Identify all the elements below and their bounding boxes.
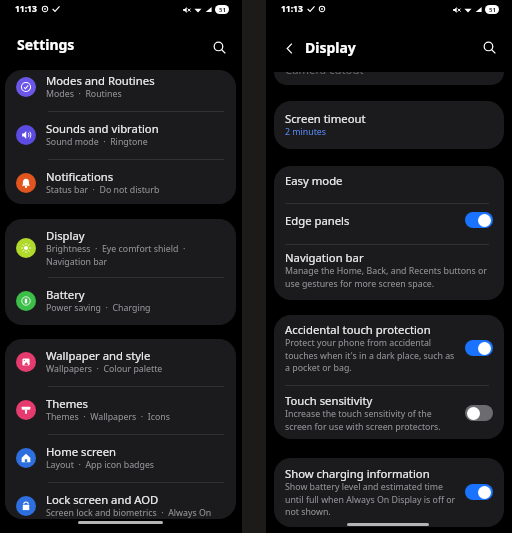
button[interactable]: Easy mode (274, 166, 504, 203)
staticText: Increase the touch sensitivity of the sc… (285, 408, 441, 432)
button[interactable]: Themes (5, 387, 236, 434)
staticText: Home screen (46, 444, 117, 459)
staticText: Screen timeout (285, 111, 366, 126)
staticText: Screen lock and biometrics · Always On (46, 507, 212, 519)
staticText: Easy mode (285, 173, 343, 188)
staticText: 51 (489, 6, 496, 14)
staticText: Show battery level and estimated time un… (285, 481, 456, 517)
staticText: Notifications (46, 169, 114, 184)
staticText: Touch sensitivity (285, 393, 373, 408)
staticText: Show charging information (285, 466, 430, 481)
button[interactable]: Switch on (465, 340, 493, 356)
button[interactable]: Sounds and vibration (5, 112, 236, 159)
button[interactable]: Display (5, 219, 236, 277)
staticText: Settings (17, 35, 75, 54)
button[interactable]: Touch sensitivity (274, 386, 504, 439)
staticText: Manage the Home, Back, and Recents butto… (285, 265, 487, 289)
staticText: Layout · App icon badges (46, 459, 155, 471)
staticText: Display (305, 38, 356, 57)
staticText: Power saving · Charging (46, 302, 151, 314)
staticText: Edge panels (285, 213, 350, 228)
button[interactable]: Home screen (5, 435, 236, 482)
button[interactable]: Switch on (465, 484, 493, 500)
staticText: Display (46, 228, 85, 243)
button[interactable]: Navigation bar (274, 245, 504, 300)
staticText: Modes and Routines (46, 73, 155, 88)
button[interactable]: Accidental touch protection (274, 315, 504, 385)
staticText: Themes · Wallpapers · Icons (46, 411, 170, 423)
button[interactable]: Battery (5, 278, 236, 325)
staticText: 2 minutes (285, 126, 327, 138)
button[interactable]: Modes and Routines (5, 70, 236, 111)
staticText: 11:13 (15, 3, 37, 15)
button[interactable]: Wallpaper and style (5, 339, 236, 386)
button[interactable]: Back (281, 40, 297, 56)
button[interactable]: Search (478, 36, 500, 58)
button[interactable]: Switch off (465, 405, 493, 421)
button[interactable]: Edge panels (274, 204, 504, 244)
staticText: Brightness · Eye comfort shield · Naviga… (46, 243, 186, 267)
button[interactable]: Search (208, 36, 230, 58)
staticText: Sound mode · Ringtone (46, 136, 148, 148)
staticText: Lock screen and AOD (46, 492, 159, 507)
staticText: Modes · Routines (46, 88, 122, 100)
staticText: Status bar · Do not disturb (46, 184, 160, 196)
button[interactable]: Lock screen and AOD (5, 483, 236, 519)
staticText: Protect your phone from accidental touch… (285, 337, 455, 373)
button[interactable]: Show charging information (274, 458, 504, 527)
staticText: Wallpapers · Colour palette (46, 363, 163, 375)
staticText: Wallpaper and style (46, 348, 151, 363)
staticText: Navigation bar (285, 250, 364, 265)
button[interactable]: Notifications (5, 160, 236, 204)
button[interactable]: Camera cutout (274, 72, 504, 85)
staticText: Themes (46, 396, 88, 411)
staticText: 51 (219, 6, 226, 14)
staticText: 11:13 (281, 3, 303, 15)
staticText: Sounds and vibration (46, 121, 159, 136)
staticText: Battery (46, 287, 85, 302)
staticText: Accidental touch protection (285, 322, 431, 337)
staticText: Camera cutout (285, 72, 364, 75)
button[interactable]: Screen timeout (274, 101, 504, 149)
button[interactable]: Switch on (465, 212, 493, 228)
